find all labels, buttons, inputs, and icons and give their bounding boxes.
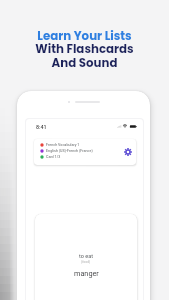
- button[interactable]: Settings: [121, 145, 134, 158]
- button[interactable]: French Vocabulary 1: [34, 139, 136, 165]
- staticText: French Vocabulary 1: [46, 143, 80, 147]
- staticText: Card 1/3: [46, 155, 61, 159]
- staticText: And Sound: [0, 55, 169, 72]
- staticText: English (US)-French (France): [46, 149, 93, 153]
- staticText: (food): [81, 260, 91, 264]
- staticText: manger: [74, 269, 99, 278]
- staticText: to eat: [79, 253, 93, 259]
- staticText: 8:41: [36, 124, 47, 130]
- staticText: With Flashcards: [0, 41, 169, 58]
- button[interactable]: to eat: [35, 214, 137, 300]
- staticText: Learn Your Lists: [0, 28, 169, 45]
